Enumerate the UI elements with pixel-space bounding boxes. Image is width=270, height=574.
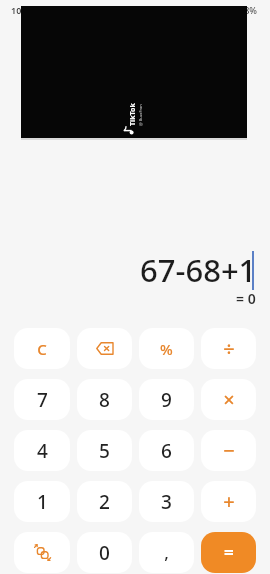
staticText: 2 (99, 489, 110, 515)
staticText: 8 (99, 387, 110, 413)
button[interactable]: 5 (77, 430, 132, 471)
staticText: 7 (37, 387, 48, 413)
staticText: ÷ (223, 335, 235, 362)
staticText: 68% (239, 4, 257, 16)
button[interactable]: TikTok (21, 6, 247, 138)
button[interactable]: × (201, 379, 256, 420)
staticText: = 0 (236, 289, 256, 308)
button[interactable]: , (139, 532, 194, 573)
button[interactable]: C (14, 328, 70, 369)
staticText: × (223, 386, 235, 413)
staticText: − (223, 437, 235, 464)
button[interactable]: + (201, 481, 256, 522)
staticText: % (160, 339, 173, 359)
staticText: C (37, 339, 47, 359)
button[interactable]: 9 (139, 379, 194, 420)
staticText: 3 (161, 489, 172, 515)
staticText: 5 (99, 438, 110, 464)
button[interactable]: 4 (14, 430, 70, 471)
staticText: , (164, 541, 169, 564)
button[interactable]: 7 (14, 379, 70, 420)
staticText: 67-68+1 (140, 249, 257, 291)
button[interactable] (14, 532, 70, 573)
button[interactable]: 6 (139, 430, 194, 471)
button[interactable]: % (139, 328, 194, 369)
staticText: 9 (161, 387, 172, 413)
button[interactable]: 3 (139, 481, 194, 522)
staticText: 10:56 (11, 4, 35, 16)
staticText: 6 (161, 438, 172, 464)
staticText: = (224, 541, 234, 564)
staticText: @ BuzzFran (138, 104, 143, 126)
staticText: 1 (37, 489, 48, 515)
button[interactable]: 2 (77, 481, 132, 522)
staticText: + (223, 488, 235, 515)
button[interactable]: − (201, 430, 256, 471)
staticText: 0 (99, 540, 110, 566)
button[interactable]: 0 (77, 532, 132, 573)
staticText: 4 (37, 438, 48, 464)
button[interactable]: = (201, 532, 256, 573)
button[interactable]: 1 (14, 481, 70, 522)
button[interactable] (77, 328, 132, 369)
staticText: TikTok (128, 103, 138, 126)
button[interactable]: 8 (77, 379, 132, 420)
button[interactable]: ÷ (201, 328, 256, 369)
